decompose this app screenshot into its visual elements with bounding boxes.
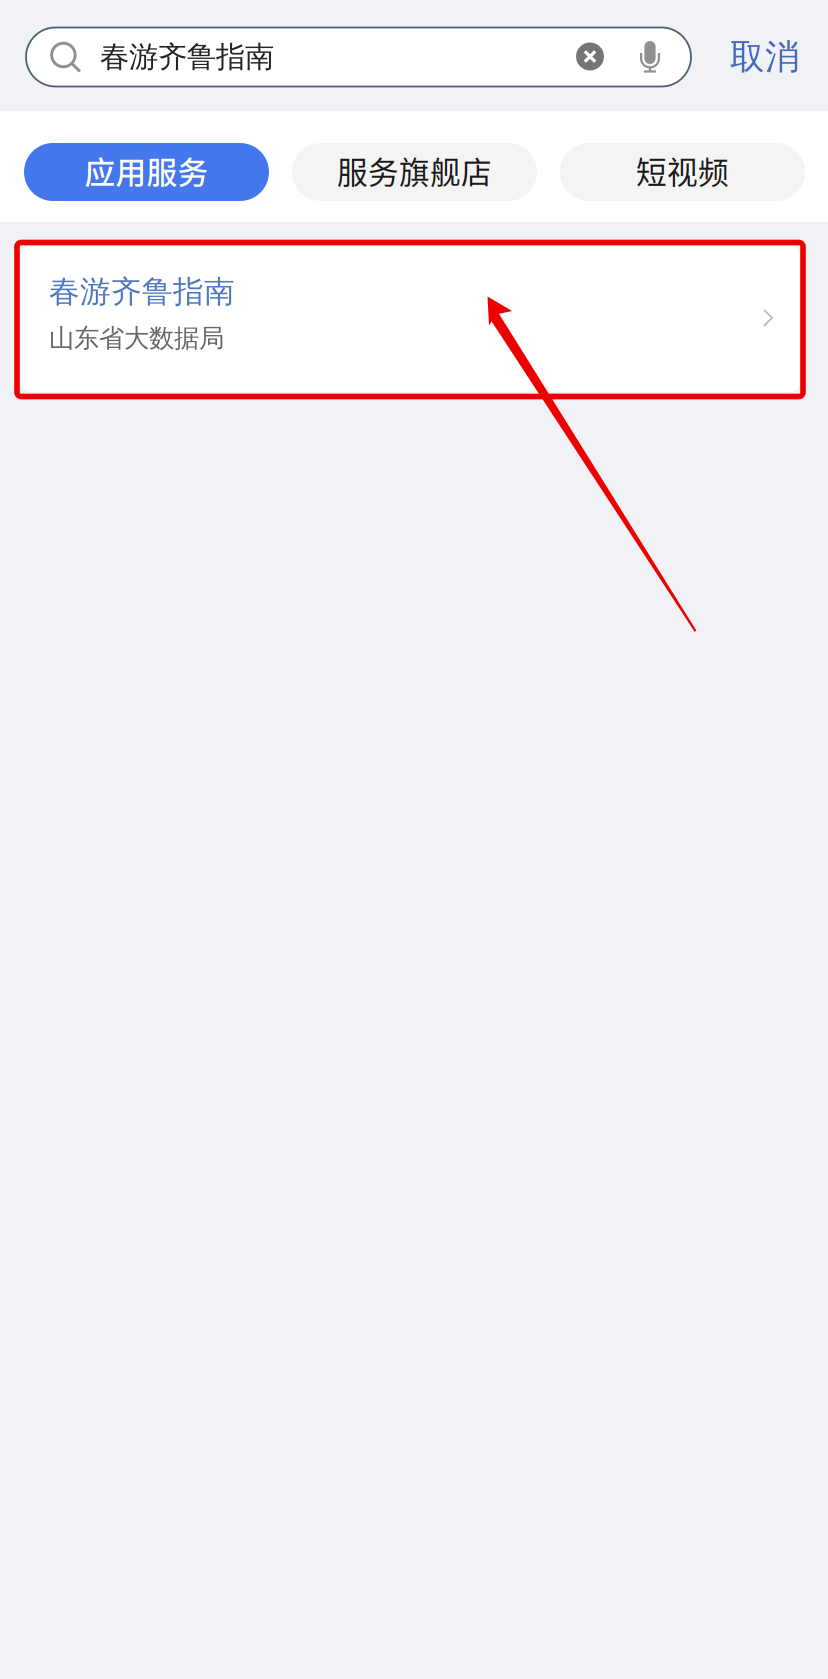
staticText: 春游齐鲁指南 xyxy=(49,273,235,311)
staticText: 服务旗舰店 xyxy=(337,148,492,193)
staticText: 取消 xyxy=(730,36,800,78)
button[interactable]: 取消 xyxy=(715,24,815,87)
staticText: 应用服务 xyxy=(84,148,208,193)
staticText: 山东省大数据局 xyxy=(49,323,224,354)
staticText: 春游齐鲁指南 xyxy=(100,39,274,75)
button[interactable]: 服务旗舰店 xyxy=(292,143,537,201)
button[interactable]: Clear search text xyxy=(576,42,604,71)
button[interactable]: 短视频 xyxy=(560,143,805,201)
button[interactable]: 春游齐鲁指南 xyxy=(20,246,800,392)
button[interactable]: 应用服务 xyxy=(24,143,269,201)
button[interactable]: Voice search xyxy=(604,39,691,75)
button[interactable]: 春游齐鲁指南 xyxy=(26,27,274,86)
staticText: 短视频 xyxy=(636,148,729,193)
